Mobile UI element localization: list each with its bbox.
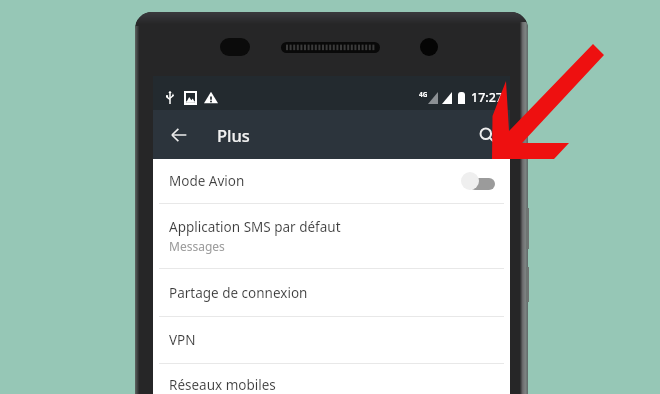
button[interactable]: Mode Avion toggle [461, 172, 495, 190]
staticText: Plus [217, 124, 250, 146]
staticText: 17:27 [471, 89, 504, 106]
button[interactable]: Partage de connexion [153, 269, 510, 316]
button[interactable]: Réseaux mobiles [153, 364, 510, 394]
button[interactable]: VPN [153, 317, 510, 363]
staticText: Application SMS par défaut [169, 218, 341, 236]
staticText: Réseaux mobiles [169, 376, 276, 394]
button[interactable]: Application SMS par défaut [153, 204, 510, 268]
staticText: Messages [169, 238, 225, 254]
staticText: Partage de connexion [169, 284, 308, 302]
staticText: 4G [419, 90, 428, 99]
button[interactable]: Search [467, 115, 507, 155]
staticText: VPN [169, 331, 196, 349]
button[interactable]: Back [159, 115, 199, 155]
button[interactable]: Mode Avion [153, 159, 510, 203]
staticText: Mode Avion [169, 172, 245, 190]
